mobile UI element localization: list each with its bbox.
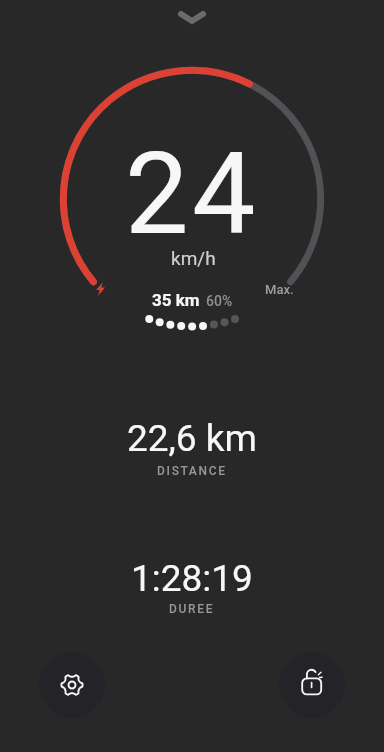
staticText: 22,6 km: [127, 417, 258, 460]
staticText: 35 km: [152, 290, 200, 310]
staticText: Max.: [265, 282, 294, 297]
button[interactable]: Settings: [39, 652, 105, 718]
button[interactable]: Collapse: [165, 2, 219, 32]
staticText: DISTANCE: [157, 464, 227, 478]
staticText: 60%: [206, 293, 233, 309]
staticText: 1:28:19: [131, 557, 253, 600]
button[interactable]: Unlock: [279, 652, 345, 718]
staticText: 24: [125, 128, 260, 260]
staticText: DUREE: [169, 602, 215, 616]
staticText: km/h: [171, 247, 216, 269]
